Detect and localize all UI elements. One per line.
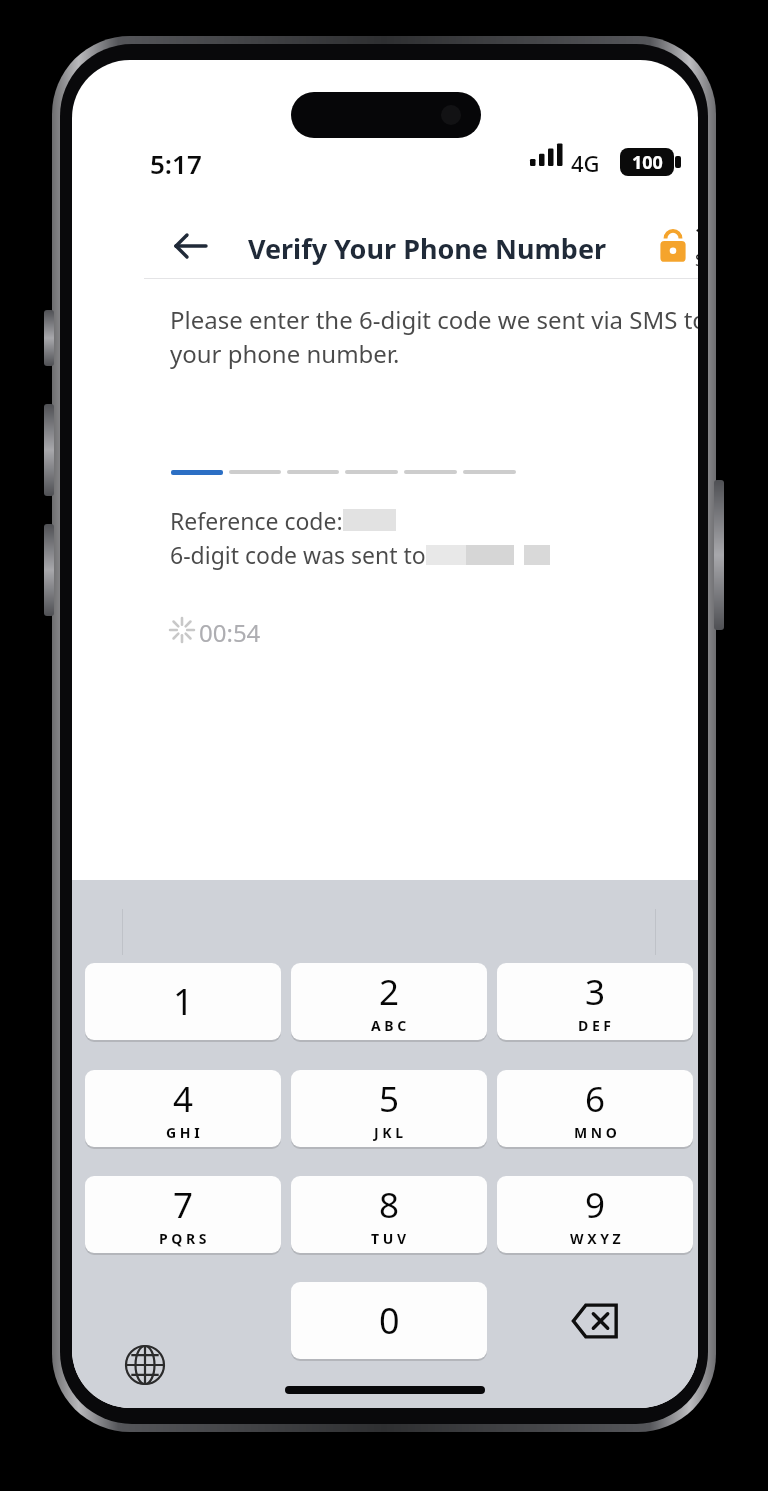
button[interactable]: [287, 470, 339, 474]
staticText: 100%: [695, 221, 698, 246]
button[interactable]: 100%: [658, 218, 698, 274]
staticText: W X Y Z: [570, 1229, 621, 1248]
button[interactable]: 2: [291, 963, 487, 1040]
staticText: 6: [585, 1075, 606, 1123]
staticText: D E F: [578, 1016, 612, 1035]
staticText: 00:54: [199, 616, 261, 649]
staticText: 1: [173, 977, 194, 1026]
button[interactable]: [345, 470, 398, 474]
button[interactable]: 0: [291, 1282, 487, 1359]
button[interactable]: [171, 470, 223, 475]
staticText: 5:17: [150, 146, 202, 181]
staticText: 3: [585, 968, 606, 1016]
staticText: 4G: [571, 148, 600, 178]
staticText: J K L: [374, 1123, 404, 1142]
button[interactable]: 1: [85, 963, 281, 1040]
button[interactable]: [463, 470, 516, 474]
staticText: P Q R S: [159, 1229, 207, 1248]
button[interactable]: Backspace: [497, 1282, 693, 1359]
button[interactable]: Change keyboard language: [110, 1330, 180, 1400]
staticText: G H I: [166, 1123, 200, 1142]
button[interactable]: Back: [160, 215, 222, 277]
button[interactable]: 6: [497, 1070, 693, 1147]
staticText: T U V: [371, 1229, 407, 1248]
button[interactable]: 7: [85, 1176, 281, 1253]
button[interactable]: [229, 470, 281, 474]
staticText: Reference code:: [170, 505, 343, 536]
button[interactable]: 3: [497, 963, 693, 1040]
staticText: 2: [379, 968, 400, 1016]
staticText: Secure: [695, 248, 698, 271]
staticText: 8: [379, 1181, 400, 1229]
staticText: 7: [173, 1181, 194, 1229]
staticText: 5: [379, 1075, 400, 1123]
staticText: M N O: [574, 1123, 617, 1142]
staticText: 9: [585, 1181, 606, 1229]
staticText: 100: [632, 150, 663, 175]
button[interactable]: 9: [497, 1176, 693, 1253]
staticText: Verify Your Phone Number: [217, 230, 637, 267]
button[interactable]: 8: [291, 1176, 487, 1253]
staticText: 0: [379, 1296, 400, 1345]
button[interactable]: 5: [291, 1070, 487, 1147]
staticText: 4: [173, 1075, 194, 1123]
staticText: A B C: [371, 1016, 407, 1035]
button[interactable]: [404, 470, 457, 474]
button[interactable]: 4: [85, 1070, 281, 1147]
staticText: Please enter the 6-digit code we sent vi…: [170, 303, 698, 370]
staticText: 6-digit code was sent to: [170, 539, 426, 570]
